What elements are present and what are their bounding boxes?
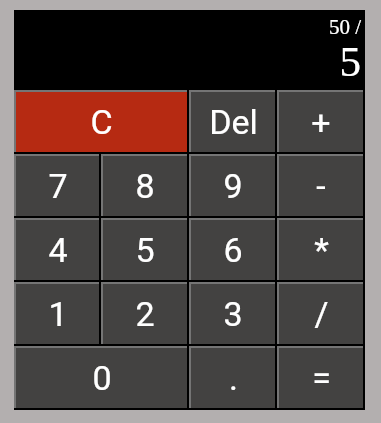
staticText: . — [229, 358, 238, 398]
button[interactable]: 0 — [14, 346, 189, 410]
staticText: 6 — [223, 230, 243, 270]
button[interactable]: C — [14, 90, 189, 154]
staticText: 5 — [135, 230, 155, 270]
button[interactable]: . — [189, 346, 277, 410]
staticText: 4 — [48, 230, 68, 270]
button[interactable]: 8 — [101, 154, 189, 218]
staticText: 0 — [92, 358, 112, 398]
button[interactable]: + — [277, 90, 365, 154]
button[interactable]: 6 — [189, 218, 277, 282]
button[interactable]: * — [277, 218, 365, 282]
button[interactable]: 5 — [101, 218, 189, 282]
staticText: * — [314, 230, 329, 270]
button[interactable]: 9 — [189, 154, 277, 218]
button[interactable]: 7 — [14, 154, 101, 218]
button[interactable]: 4 — [14, 218, 101, 282]
staticText: 8 — [135, 166, 155, 206]
button[interactable]: 1 — [14, 282, 101, 346]
staticText: 50 / — [328, 15, 361, 38]
staticText: 5 — [339, 38, 361, 86]
button[interactable]: 3 — [189, 282, 277, 346]
staticText: 1 — [48, 294, 68, 334]
staticText: Del — [209, 102, 258, 142]
staticText: / — [314, 294, 329, 334]
button[interactable]: - — [277, 154, 365, 218]
button[interactable]: = — [277, 346, 365, 410]
button[interactable]: Del — [189, 90, 277, 154]
staticText: - — [316, 166, 326, 206]
staticText: + — [311, 102, 331, 142]
staticText: C — [90, 102, 113, 142]
staticText: 7 — [48, 166, 68, 206]
button[interactable]: 2 — [101, 282, 189, 346]
staticText: 9 — [223, 166, 243, 206]
staticText: 3 — [223, 294, 243, 334]
staticText: = — [312, 358, 331, 398]
button[interactable]: / — [277, 282, 365, 346]
staticText: 2 — [135, 294, 155, 334]
